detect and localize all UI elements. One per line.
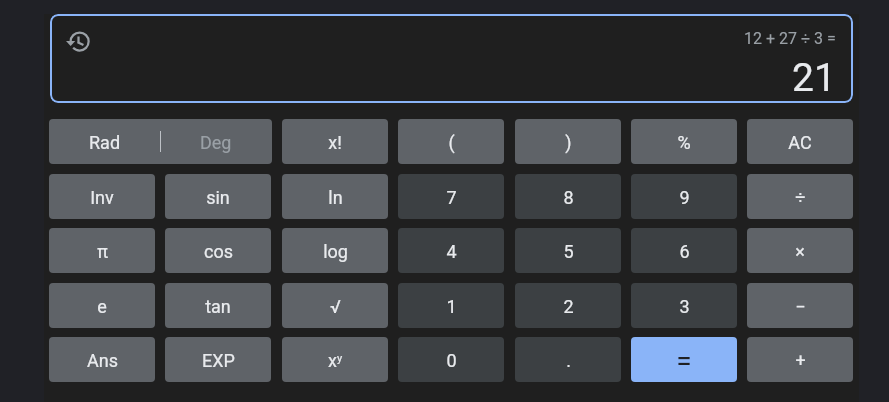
staticText: −: [795, 296, 806, 317]
staticText: √: [330, 296, 341, 317]
button[interactable]: √: [282, 283, 388, 328]
button[interactable]: log: [282, 228, 388, 273]
staticText: Ans: [87, 350, 118, 371]
button[interactable]: 3: [631, 283, 737, 328]
staticText: 3: [679, 296, 690, 317]
staticText: 0: [446, 350, 457, 371]
staticText: +: [795, 350, 806, 371]
button[interactable]: sin: [165, 174, 271, 219]
button[interactable]: 0: [398, 337, 504, 382]
button[interactable]: xy: [282, 337, 388, 382]
button[interactable]: 5: [515, 228, 621, 273]
staticText: (: [448, 132, 455, 153]
button[interactable]: 1: [398, 283, 504, 328]
staticText: 2: [563, 296, 574, 317]
staticText: ×: [795, 241, 805, 262]
staticText: ): [565, 132, 572, 153]
button[interactable]: =: [631, 337, 737, 382]
button[interactable]: Inv: [49, 174, 155, 219]
button[interactable]: x!: [282, 119, 388, 164]
button[interactable]: Rad: [49, 119, 272, 164]
button[interactable]: ÷: [747, 174, 853, 219]
staticText: log: [323, 241, 348, 262]
staticText: 9: [679, 187, 690, 208]
staticText: cos: [204, 241, 233, 262]
staticText: ln: [328, 187, 343, 208]
button[interactable]: −: [747, 283, 853, 328]
staticText: 21: [792, 55, 836, 101]
button[interactable]: 2: [515, 283, 621, 328]
button[interactable]: e: [49, 283, 155, 328]
button[interactable]: ×: [747, 228, 853, 273]
staticText: sin: [206, 187, 230, 208]
button[interactable]: AC: [747, 119, 853, 164]
button[interactable]: +: [747, 337, 853, 382]
staticText: π: [97, 241, 108, 262]
staticText: Rad: [89, 132, 121, 153]
staticText: tan: [205, 296, 231, 317]
staticText: %: [677, 132, 691, 153]
button[interactable]: 8: [515, 174, 621, 219]
staticText: 7: [446, 187, 457, 208]
button[interactable]: 7: [398, 174, 504, 219]
staticText: EXP: [202, 350, 235, 371]
staticText: ÷: [795, 187, 806, 208]
staticText: .: [566, 350, 571, 371]
button[interactable]: cos: [165, 228, 271, 273]
staticText: Inv: [90, 187, 114, 208]
staticText: 1: [446, 296, 457, 317]
staticText: xy: [328, 350, 343, 371]
staticText: e: [97, 296, 107, 317]
staticText: Deg: [200, 132, 232, 153]
button[interactable]: π: [49, 228, 155, 273]
button[interactable]: History: [65, 28, 92, 55]
button[interactable]: tan: [165, 283, 271, 328]
button[interactable]: ln: [282, 174, 388, 219]
staticText: x!: [328, 132, 342, 153]
staticText: 8: [563, 187, 574, 208]
button[interactable]: .: [515, 337, 621, 382]
button[interactable]: 4: [398, 228, 504, 273]
button[interactable]: 6: [631, 228, 737, 273]
button[interactable]: (: [398, 119, 504, 164]
button[interactable]: Ans: [49, 337, 155, 382]
staticText: AC: [788, 132, 812, 153]
staticText: 6: [679, 241, 690, 262]
button[interactable]: 9: [631, 174, 737, 219]
button[interactable]: %: [631, 119, 737, 164]
staticText: 4: [446, 241, 457, 262]
button[interactable]: ): [515, 119, 621, 164]
staticText: =: [676, 344, 692, 377]
staticText: 12 + 27 ÷ 3 =: [744, 29, 836, 48]
button[interactable]: EXP: [165, 337, 271, 382]
staticText: 5: [563, 241, 574, 262]
